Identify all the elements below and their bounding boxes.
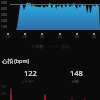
staticText: 100: [1, 92, 6, 96]
staticText: 1:00: [1, 25, 7, 29]
staticText: 最大: [74, 79, 80, 83]
staticText: 5:00: [1, 1, 7, 5]
staticText: 148: [70, 68, 83, 78]
staticText: 心拍 (bpm): [2, 57, 30, 64]
staticText: 5.0: [75, 35, 79, 39]
staticText: 分布: [71, 80, 79, 85]
staticText: 4.0: [58, 35, 62, 39]
staticText: 4:00: [1, 7, 7, 11]
staticText: 2:00: [1, 19, 7, 23]
staticText: 6.0: [92, 35, 96, 39]
staticText: ゾーン: [21, 80, 32, 85]
staticText: 150: [1, 85, 6, 89]
staticText: 1.0: [6, 35, 10, 39]
staticText: 標高: [61, 44, 70, 49]
staticText: 122: [24, 68, 37, 78]
staticText: 心拍数: [31, 44, 44, 49]
staticText: 3:00: [1, 13, 7, 17]
staticText: 3.0: [40, 35, 44, 39]
staticText: ペース: [46, 44, 59, 49]
staticText: 平均: [28, 79, 34, 83]
staticText: 2.0: [23, 35, 27, 39]
